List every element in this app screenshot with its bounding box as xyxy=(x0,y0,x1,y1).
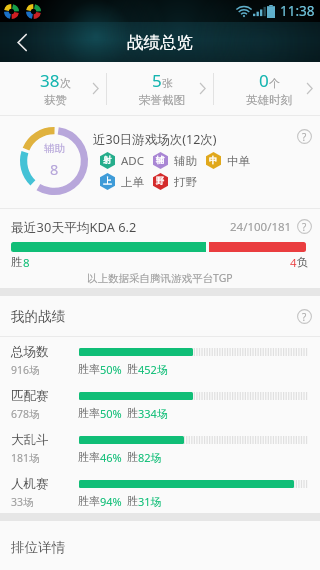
staticText: 334场 xyxy=(138,406,168,421)
button[interactable]: 射 xyxy=(100,152,153,169)
staticText: 46% xyxy=(100,450,122,465)
button[interactable]: 人机赛 xyxy=(0,469,320,513)
staticText: 中 xyxy=(209,155,218,166)
staticText: 张 xyxy=(162,76,173,90)
button[interactable]: 辅 xyxy=(153,152,206,169)
staticText: 24/100/181 xyxy=(230,219,292,235)
staticText: 辅助 xyxy=(44,142,65,155)
staticText: 打野 xyxy=(174,175,197,189)
staticText: 胜 xyxy=(11,255,23,269)
staticText: 最近30天平均KDA 6.2 xyxy=(11,218,137,235)
staticText: 0 xyxy=(259,69,269,92)
staticText: ? xyxy=(302,130,307,144)
button[interactable]: Help xyxy=(297,129,312,144)
button[interactable]: 匹配赛 xyxy=(0,381,320,425)
staticText: 11:38 xyxy=(280,2,315,20)
staticText: 胜 xyxy=(127,450,138,464)
staticText: 50% xyxy=(100,362,122,377)
button[interactable]: 中 xyxy=(206,152,259,169)
staticText: 战绩总览 xyxy=(127,32,193,53)
staticText: 荣誉截图 xyxy=(139,93,185,107)
button[interactable]: Help xyxy=(297,309,312,324)
staticText: 82场 xyxy=(138,450,162,465)
staticText: 31场 xyxy=(138,494,162,509)
staticText: 匹配赛 xyxy=(11,388,49,404)
staticText: 胜 xyxy=(127,494,138,508)
staticText: 上 xyxy=(103,176,112,187)
staticText: 辅 xyxy=(156,155,165,166)
staticText: 5 xyxy=(152,69,162,92)
staticText: 排位详情 xyxy=(11,539,65,556)
staticText: 人机赛 xyxy=(11,476,49,492)
button[interactable]: Back xyxy=(0,22,44,62)
button[interactable]: Help xyxy=(297,219,312,234)
staticText: 大乱斗 xyxy=(11,432,49,448)
staticText: 野 xyxy=(156,176,165,187)
staticText: 获赞 xyxy=(44,93,67,107)
button[interactable]: 5 xyxy=(107,62,213,115)
staticText: 8 xyxy=(23,255,30,271)
button[interactable]: 总场数 xyxy=(0,337,320,381)
staticText: 个 xyxy=(269,76,280,90)
staticText: 胜率 xyxy=(78,406,100,420)
staticText: 英雄时刻 xyxy=(246,93,292,107)
button[interactable]: 0 xyxy=(214,62,320,115)
button[interactable]: 38 xyxy=(0,62,106,115)
staticText: 678场 xyxy=(11,407,40,421)
button[interactable]: 上 xyxy=(100,173,153,190)
staticText: 181场 xyxy=(11,451,40,465)
staticText: 胜率 xyxy=(78,450,100,464)
staticText: 上单 xyxy=(121,175,144,189)
staticText: ? xyxy=(302,220,307,234)
staticText: 94% xyxy=(100,494,122,509)
staticText: 我的战绩 xyxy=(11,308,65,325)
staticText: 33场 xyxy=(11,495,34,509)
staticText: 次 xyxy=(60,76,71,90)
staticText: 射 xyxy=(103,155,112,166)
staticText: 8 xyxy=(50,159,59,179)
staticText: 胜率 xyxy=(78,362,100,376)
staticText: 38 xyxy=(40,69,60,92)
button[interactable]: 野 xyxy=(153,173,206,190)
staticText: 近30日游戏场次(12次) xyxy=(93,131,217,148)
staticText: 以上数据采自腾讯游戏平台TGP xyxy=(87,271,233,285)
staticText: 胜率 xyxy=(78,494,100,508)
staticText: 负 xyxy=(297,255,309,269)
staticText: 总场数 xyxy=(11,344,49,360)
button[interactable]: 大乱斗 xyxy=(0,425,320,469)
staticText: 452场 xyxy=(138,362,168,377)
staticText: 50% xyxy=(100,406,122,421)
staticText: 916场 xyxy=(11,363,40,377)
staticText: 辅助 xyxy=(174,154,197,168)
staticText: ? xyxy=(302,310,307,324)
staticText: ADC xyxy=(121,153,145,169)
staticText: 胜 xyxy=(127,406,138,420)
staticText: 胜 xyxy=(127,362,138,376)
staticText: 中单 xyxy=(227,154,250,168)
staticText: 4 xyxy=(290,255,297,271)
